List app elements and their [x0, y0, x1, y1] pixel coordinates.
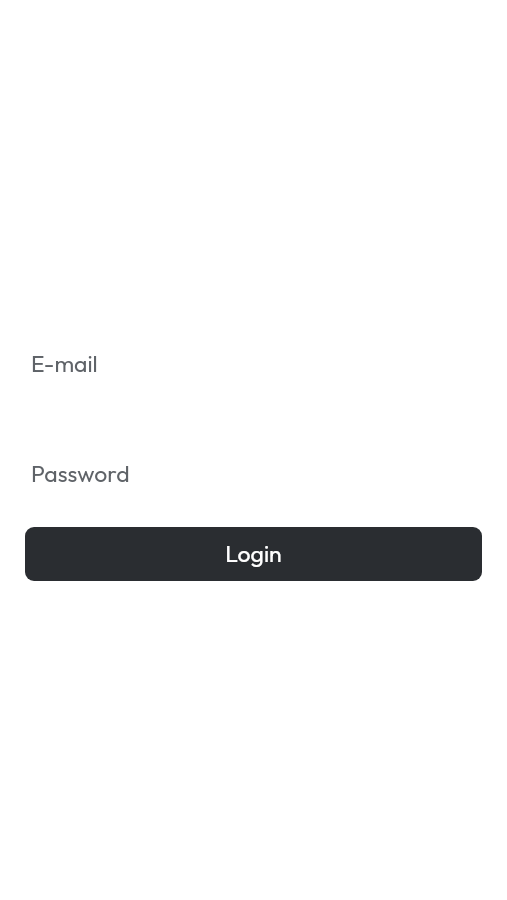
staticText: Login: [225, 539, 282, 568]
staticText: E-mail: [31, 349, 98, 378]
button[interactable]: Password: [25, 451, 482, 495]
button[interactable]: Login: [25, 527, 482, 581]
button[interactable]: E-mail: [25, 341, 482, 385]
staticText: Password: [31, 459, 130, 488]
